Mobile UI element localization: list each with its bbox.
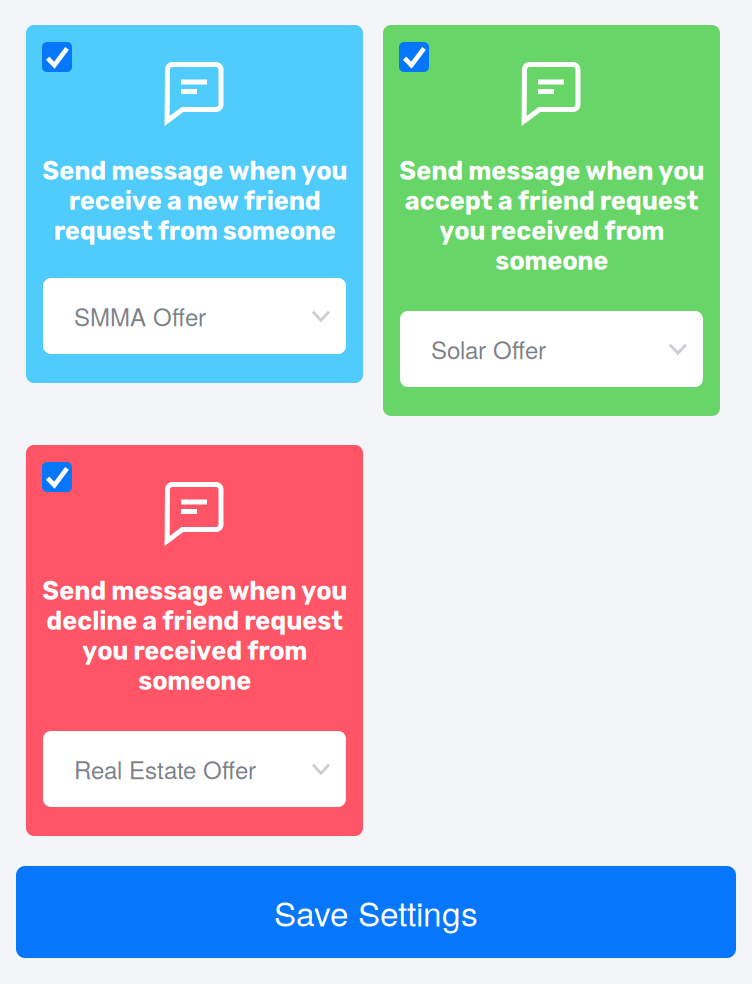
button[interactable]: Enabled <box>399 42 429 72</box>
button[interactable]: SMMA Offer <box>43 278 346 354</box>
staticText: Send message when you decline a friend r… <box>42 576 347 696</box>
button[interactable]: Solar Offer <box>400 311 703 387</box>
button[interactable]: Save Settings <box>16 866 736 958</box>
button[interactable]: Enabled <box>42 42 72 72</box>
staticText: SMMA Offer <box>74 299 206 333</box>
staticText: Send message when you accept a friend re… <box>399 156 704 276</box>
staticText: Real Estate Offer <box>74 752 256 786</box>
button[interactable]: Enabled <box>42 462 72 492</box>
button[interactable]: Real Estate Offer <box>43 731 346 807</box>
staticText: Send message when you receive a new frie… <box>42 156 347 246</box>
staticText: Save Settings <box>274 888 478 936</box>
staticText: Solar Offer <box>431 332 546 366</box>
